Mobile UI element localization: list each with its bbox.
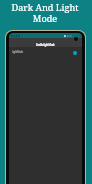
staticText: Enable Light Mode (36, 43, 55, 47)
staticText: Dark And Light Mode (0, 1, 91, 25)
button[interactable]: Light Mode (9, 47, 82, 57)
other: Light mode switch (73, 51, 77, 55)
other: Front camera (74, 37, 78, 41)
button[interactable]: Enable Light Mode (9, 38, 82, 47)
staticText: Light Mode (12, 50, 23, 54)
